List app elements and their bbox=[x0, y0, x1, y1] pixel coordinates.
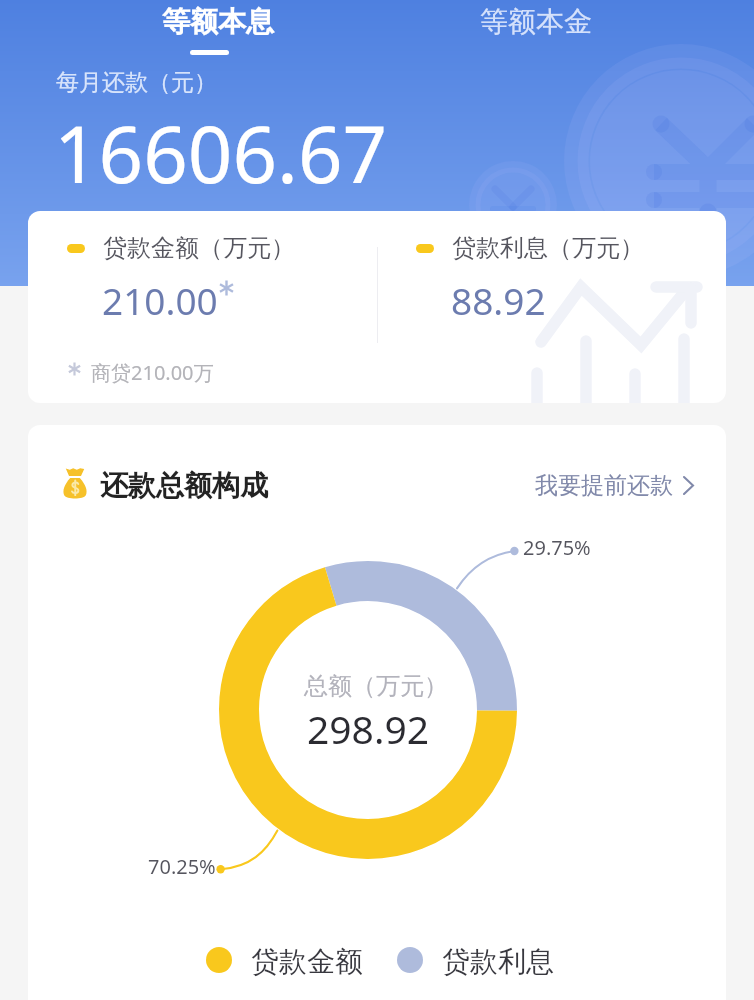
staticText: 70.25% bbox=[148, 853, 216, 880]
button[interactable]: 贷款利息 bbox=[397, 942, 554, 977]
staticText: 等额本息 bbox=[162, 4, 274, 39]
staticText: 贷款金额（万元） bbox=[103, 233, 295, 263]
staticText: 每月还款（元） bbox=[56, 68, 217, 97]
staticText: 贷款金额 bbox=[251, 944, 363, 979]
button[interactable]: 贷款金额 bbox=[206, 942, 363, 977]
staticText: 29.75% bbox=[523, 534, 591, 561]
button[interactable]: 我要提前还款 bbox=[533, 463, 696, 508]
staticText: 贷款利息 bbox=[442, 944, 554, 979]
button[interactable]: 等额本金 bbox=[451, 0, 621, 62]
staticText: 等额本金 bbox=[480, 4, 592, 39]
staticText: 我要提前还款 bbox=[535, 471, 673, 500]
staticText: 贷款利息（万元） bbox=[452, 233, 644, 263]
staticText: 商贷210.00万 bbox=[91, 359, 214, 386]
staticText: 16606.67 bbox=[54, 100, 388, 206]
staticText: 88.92 bbox=[451, 275, 546, 325]
staticText: 298.92 bbox=[307, 702, 429, 755]
staticText: 总额（万元） bbox=[304, 671, 448, 701]
staticText: 还款总额构成 bbox=[100, 468, 268, 503]
button[interactable]: 等额本息 bbox=[133, 0, 303, 62]
staticText: 210.00 bbox=[102, 275, 218, 325]
other: 还款总额构成饼图：贷款金额 70.25%，贷款利息 29.75% bbox=[28, 425, 726, 1000]
